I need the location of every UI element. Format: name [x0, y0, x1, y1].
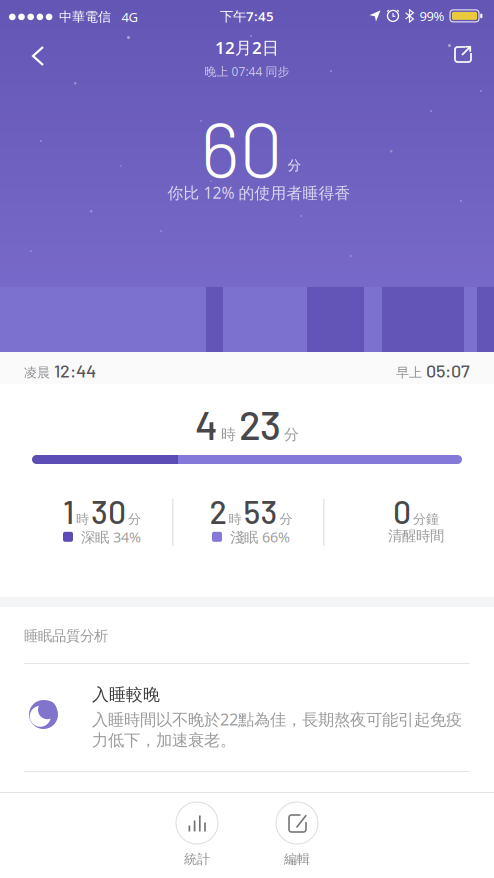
staticText: 分 — [279, 511, 292, 527]
staticText: 早上 — [396, 364, 422, 381]
staticText: 入睡時間以不晚於22點為佳，長期熬夜可能引起免疫 力低下，加速衰老。 — [92, 708, 462, 751]
staticText: 2 — [209, 492, 226, 530]
staticText: 時 — [76, 511, 89, 527]
staticText: 深眠 34% — [81, 527, 141, 547]
staticText: 23 — [239, 400, 281, 448]
button[interactable]: 分享 — [440, 30, 494, 74]
staticText: 清醒時間 — [388, 527, 444, 545]
staticText: 凌晨 — [24, 364, 50, 381]
staticText: 時 — [221, 425, 236, 444]
button[interactable]: 編輯 — [276, 802, 318, 867]
staticText: 你比 12% 的使用者睡得香 — [167, 182, 350, 203]
staticText: 99% — [419, 7, 444, 25]
staticText: 淺眠 66% — [230, 527, 290, 547]
staticText: 4 — [195, 400, 218, 448]
staticText: 05:07 — [426, 359, 470, 381]
staticText: 4G — [122, 8, 139, 26]
staticText: 30 — [91, 492, 126, 530]
button[interactable]: 返回 — [0, 30, 61, 78]
staticText: 中華電信 — [59, 9, 111, 25]
staticText: 60 — [200, 101, 282, 193]
staticText: 分 — [128, 511, 141, 527]
staticText: 編輯 — [284, 851, 310, 867]
staticText: 睡眠品質分析 — [24, 627, 108, 645]
staticText: 入睡較晚 — [92, 684, 160, 705]
staticText: 時 — [228, 511, 241, 527]
staticText: 分鐘 — [413, 511, 439, 527]
staticText: 1 — [63, 492, 74, 530]
button[interactable]: 統計 — [176, 802, 218, 867]
staticText: 12:44 — [54, 359, 96, 381]
staticText: 分 — [287, 157, 301, 174]
staticText: 分 — [284, 425, 299, 444]
staticText: 統計 — [184, 851, 210, 867]
staticText: 下午7:45 — [220, 7, 274, 25]
staticText: 晚上 07:44 同步 — [204, 63, 289, 79]
staticText: 12月2日 — [215, 36, 279, 59]
staticText: 53 — [243, 492, 277, 530]
staticText: 0 — [393, 492, 411, 530]
